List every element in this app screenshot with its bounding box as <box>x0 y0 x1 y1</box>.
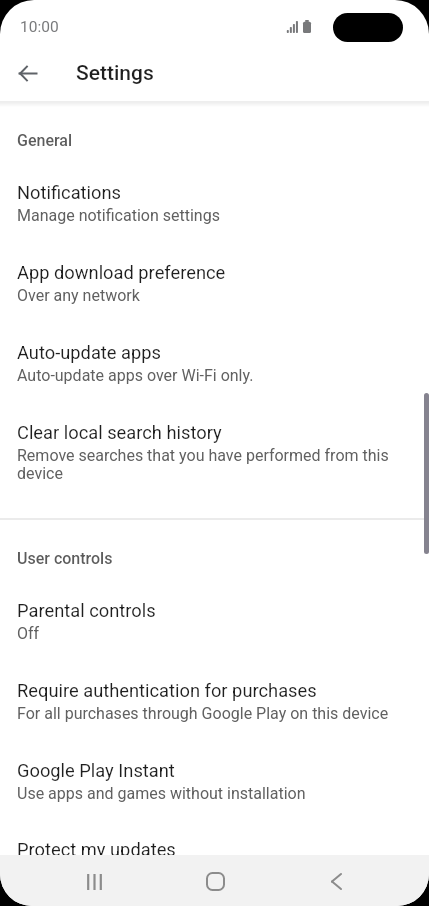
staticText: Protect my updates <box>17 839 176 860</box>
button[interactable]: Protect my updates <box>0 821 429 901</box>
button[interactable]: Parental controls <box>0 582 429 662</box>
staticText: 10:00 <box>20 18 59 36</box>
staticText: For all purchases through Google Play on… <box>17 704 389 723</box>
button[interactable]: Google Play Instant <box>0 742 429 822</box>
staticText: General <box>17 131 73 150</box>
staticText: Over any network <box>17 286 140 305</box>
staticText: Settings <box>76 61 154 86</box>
staticText: Auto-update apps over Wi-Fi only. <box>17 366 254 385</box>
staticText: Notifications <box>17 182 122 203</box>
staticText: Use apps and games without installation <box>17 784 306 803</box>
staticText: Remove searches that you have performed … <box>17 446 399 483</box>
button[interactable]: Back <box>8 53 48 93</box>
staticText: Auto-update apps <box>17 342 162 363</box>
staticText: Require authentication for purchases <box>17 680 317 701</box>
staticText: Manage notification settings <box>17 206 220 225</box>
staticText: Off <box>17 624 40 643</box>
staticText: User controls <box>17 549 113 568</box>
button[interactable]: Auto-update apps <box>0 324 429 404</box>
button[interactable]: Require authentication for purchases <box>0 662 429 742</box>
button[interactable]: Clear local search history <box>0 404 429 484</box>
staticText: Google Play Instant <box>17 760 175 781</box>
button[interactable]: Home <box>187 855 243 906</box>
staticText: Parental controls <box>17 600 156 621</box>
staticText: Clear local search history <box>17 422 222 443</box>
staticText: App download preference <box>17 262 226 283</box>
button[interactable]: App download preference <box>0 244 429 324</box>
button[interactable]: Back <box>308 855 364 906</box>
button[interactable]: Recent apps <box>65 855 121 906</box>
button[interactable]: Notifications <box>0 164 429 244</box>
